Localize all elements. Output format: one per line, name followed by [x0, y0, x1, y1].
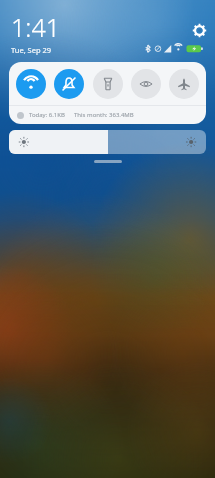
button[interactable]: Brightness — [9, 130, 206, 154]
button[interactable]: Settings — [190, 21, 208, 39]
staticText: 1:41 — [11, 10, 60, 44]
button[interactable]: Silent mode — [54, 69, 84, 99]
button[interactable]: Airplane mode — [169, 69, 199, 99]
staticText: This month: 363.4MB — [74, 111, 134, 119]
button[interactable]: Reading mode — [131, 69, 161, 99]
button[interactable]: Today: 6.1KB — [9, 106, 206, 124]
button[interactable]: Flashlight — [93, 69, 123, 99]
button[interactable]: Expand quick settings — [94, 160, 122, 163]
button[interactable]: Wi-Fi — [16, 69, 46, 99]
staticText: Today: 6.1KB — [29, 111, 65, 119]
staticText: Tue, Sep 29 — [11, 45, 52, 55]
